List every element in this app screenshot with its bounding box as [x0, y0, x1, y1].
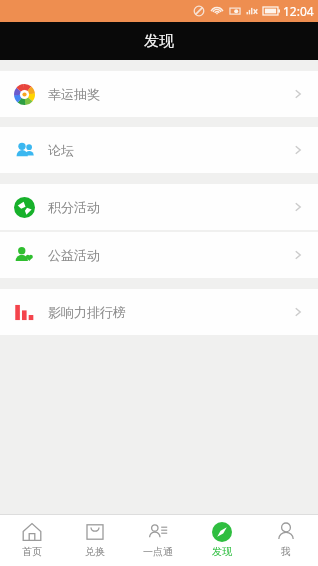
- button[interactable]: 公益活动: [0, 232, 318, 278]
- button[interactable]: 幸运抽奖: [0, 71, 318, 117]
- button[interactable]: 兑换: [63, 515, 126, 566]
- staticText: 12:04: [283, 3, 314, 19]
- staticText: 首页: [22, 545, 42, 558]
- staticText: 发现: [144, 32, 174, 51]
- button[interactable]: 影响力排行榜: [0, 289, 318, 335]
- button[interactable]: 积分活动: [0, 184, 318, 230]
- staticText: 发现: [212, 545, 232, 558]
- staticText: 我: [281, 545, 291, 558]
- staticText: 影响力排行榜: [48, 304, 126, 320]
- button[interactable]: 我: [254, 515, 318, 566]
- button[interactable]: 论坛: [0, 127, 318, 173]
- staticText: 论坛: [48, 142, 74, 158]
- staticText: 积分活动: [48, 199, 100, 215]
- button[interactable]: 首页: [0, 515, 63, 566]
- staticText: 公益活动: [48, 247, 100, 263]
- staticText: 兑换: [85, 545, 105, 558]
- staticText: 幸运抽奖: [48, 86, 100, 102]
- staticText: 一点通: [143, 545, 173, 558]
- button[interactable]: 发现: [190, 515, 254, 566]
- button[interactable]: 一点通: [126, 515, 190, 566]
